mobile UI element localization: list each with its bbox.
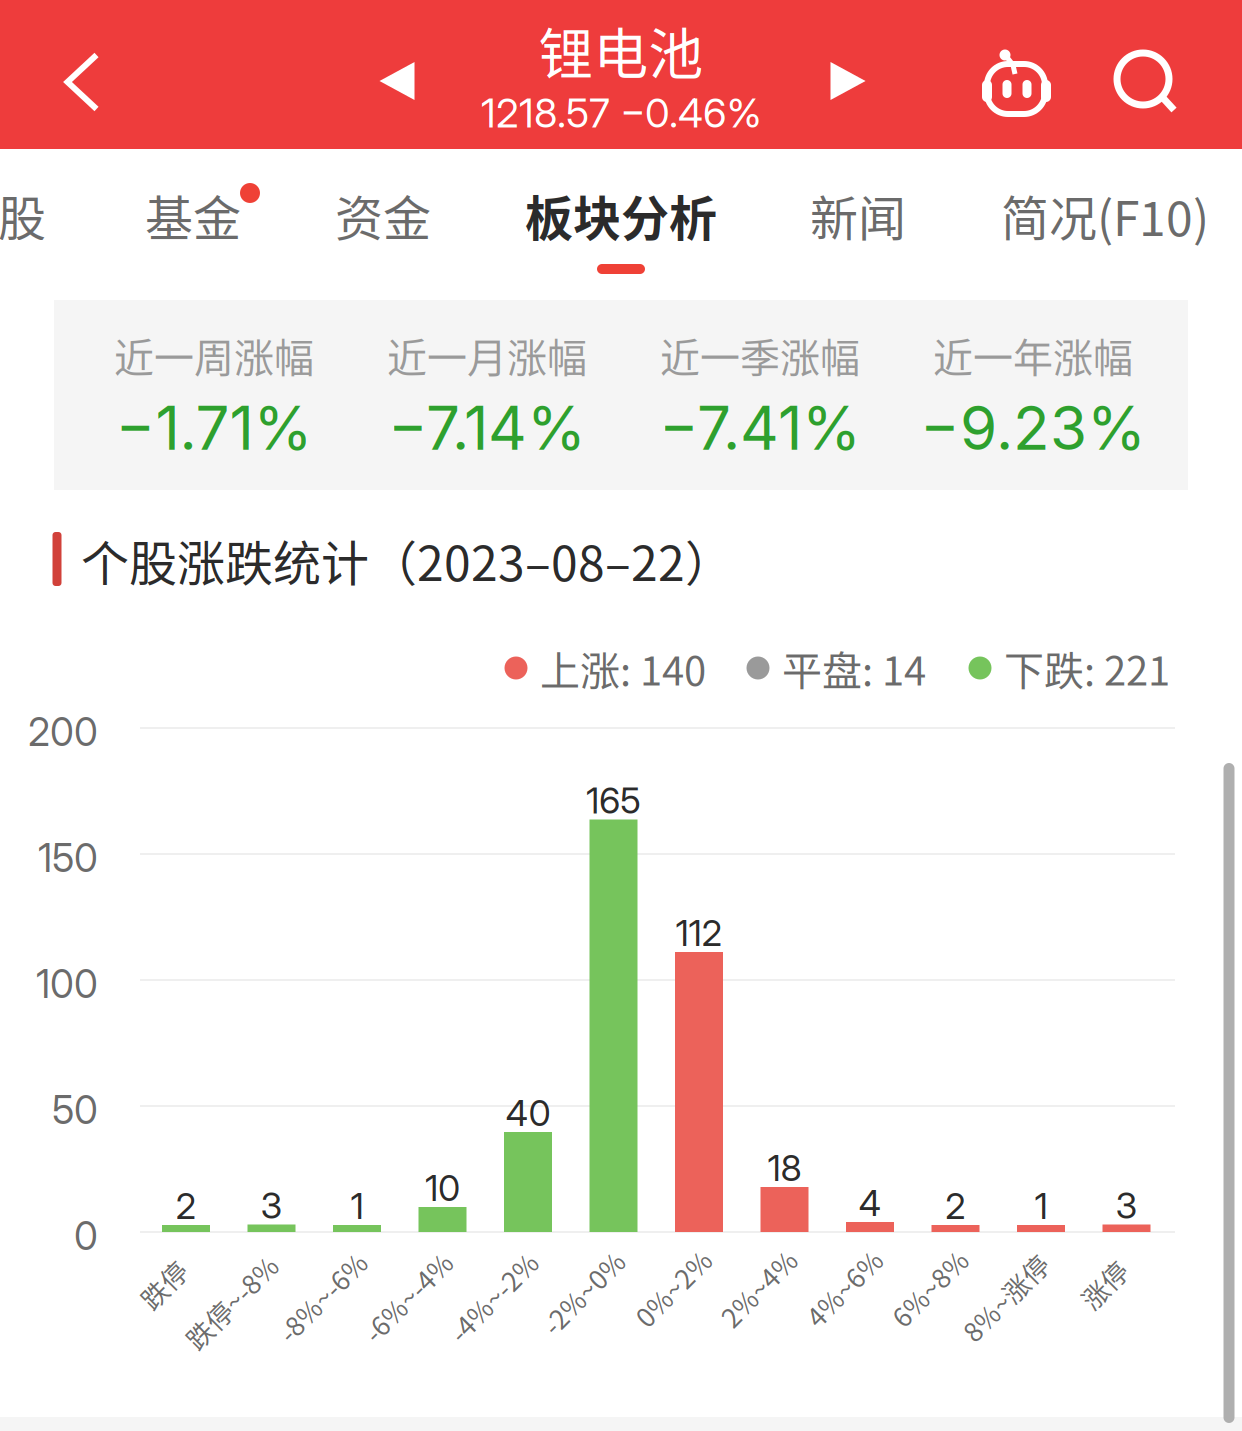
staticText: 112: [675, 911, 722, 955]
staticText: −7.14%: [388, 392, 586, 464]
staticText: 165: [586, 779, 641, 822]
staticText: 40: [505, 1091, 550, 1135]
staticText: 1: [350, 1184, 363, 1228]
staticText: 2%~4%: [711, 1269, 806, 1307]
staticText: 锂电池: [538, 10, 703, 90]
staticText: 近一月涨幅: [387, 326, 587, 384]
staticText: 50: [52, 1087, 98, 1133]
button[interactable]: Next sector: [793, 26, 903, 136]
staticText: 板块分析: [525, 180, 717, 250]
button[interactable]: 简况(F10): [980, 149, 1230, 296]
staticText: 资金: [335, 180, 431, 250]
staticText: 新闻: [810, 180, 906, 250]
staticText: 4: [858, 1181, 881, 1225]
button[interactable]: 基金: [105, 149, 281, 296]
staticText: -4%~-2%: [437, 1277, 550, 1316]
button[interactable]: Assistant: [952, 7, 1082, 156]
staticText: 跌停~-8%: [173, 1283, 291, 1321]
staticText: −7.41%: [659, 392, 861, 464]
button[interactable]: 板块分析: [502, 149, 740, 296]
staticText: 100: [36, 961, 98, 1007]
button[interactable]: 股: [0, 149, 97, 296]
staticText: 3: [260, 1184, 282, 1227]
staticText: 涨停: [1077, 1265, 1131, 1304]
staticText: 3: [1115, 1184, 1137, 1227]
staticText: 2: [945, 1184, 966, 1228]
staticText: 0%~2%: [626, 1269, 721, 1307]
button[interactable]: Back: [12, 7, 152, 156]
staticText: 跌停: [137, 1265, 191, 1304]
staticText: 近一年涨幅: [933, 326, 1133, 384]
staticText: -8%~-6%: [266, 1277, 379, 1316]
button[interactable]: 资金: [295, 149, 471, 296]
staticText: 近一季涨幅: [660, 326, 860, 384]
staticText: -6%~-4%: [351, 1277, 464, 1316]
button[interactable]: Previous sector: [342, 26, 452, 136]
staticText: 1: [1034, 1184, 1047, 1228]
staticText: 简况(F10): [1001, 180, 1209, 250]
staticText: -2%~0%: [531, 1273, 635, 1312]
staticText: 200: [28, 709, 98, 755]
button[interactable]: 新闻: [770, 149, 946, 296]
button[interactable]: Search: [1082, 8, 1212, 157]
staticText: 0: [74, 1213, 98, 1259]
staticText: 近一周涨幅: [114, 326, 314, 384]
staticText: 1218.57 −0.46%: [481, 89, 761, 137]
staticText: 个股涨跌统计（2023–08–22）: [81, 525, 733, 595]
staticText: 2: [175, 1184, 196, 1228]
staticText: 4%~6%: [797, 1269, 892, 1307]
staticText: 150: [38, 835, 98, 881]
staticText: 下跌: 221: [1004, 639, 1170, 697]
staticText: 18: [767, 1146, 801, 1190]
staticText: 基金: [145, 180, 241, 250]
staticText: 股: [0, 180, 46, 250]
staticText: 8%~涨停: [951, 1278, 1060, 1317]
staticText: 6%~8%: [882, 1269, 977, 1307]
staticText: −1.71%: [115, 392, 312, 464]
staticText: 10: [425, 1166, 460, 1210]
staticText: 上涨: 140: [540, 639, 706, 697]
staticText: −9.23%: [920, 392, 1146, 464]
staticText: 平盘: 14: [782, 639, 926, 697]
